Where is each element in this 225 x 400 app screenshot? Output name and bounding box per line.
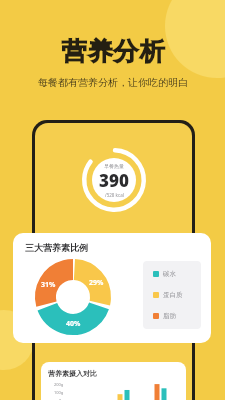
staticText: 390 <box>99 169 129 192</box>
staticText: 29% <box>89 278 104 288</box>
staticText: 40% <box>66 319 81 329</box>
staticText: 200g <box>54 382 64 387</box>
staticText: 碳水 <box>163 270 176 278</box>
staticText: /528 kcal <box>105 192 124 198</box>
staticText: 营养素摄入对比 <box>48 369 97 378</box>
staticText: 脂肪 <box>163 312 176 320</box>
staticText: 31% <box>41 280 56 290</box>
staticText: 营养分析 <box>61 36 165 67</box>
staticText: 100g <box>54 390 64 395</box>
staticText: 每餐都有营养分析，让你吃的明白 <box>38 76 188 89</box>
staticText: 早餐热量 <box>104 163 124 169</box>
staticText: 三大营养素比例 <box>25 242 88 253</box>
staticText: 蛋白质 <box>163 291 183 299</box>
button[interactable]: 营养素摄入对比 <box>41 362 186 400</box>
button[interactable]: 三大营养素比例 <box>13 233 211 343</box>
staticText: 0g <box>57 398 64 400</box>
